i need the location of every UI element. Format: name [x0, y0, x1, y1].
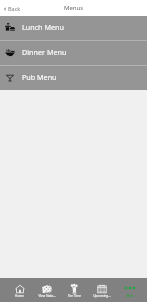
staticText: Lunch Menu: [22, 22, 64, 32]
staticText: Dinner Menu: [22, 47, 67, 57]
staticText: Home: [15, 294, 24, 298]
button[interactable]: Pub Menu: [0, 66, 147, 90]
button[interactable]: More: [116, 278, 144, 302]
button[interactable]: Upcoming: [88, 278, 116, 302]
staticText: Back: [8, 5, 21, 12]
button[interactable]: Tee Time: [60, 278, 88, 302]
staticText: Menus: [64, 4, 84, 12]
button[interactable]: Dinner Menu: [0, 41, 147, 65]
button[interactable]: Back: [0, 5, 24, 12]
staticText: View Stats...: [38, 294, 56, 298]
button[interactable]: Lunch Menu: [0, 16, 147, 40]
staticText: Pub Menu: [22, 72, 57, 82]
staticText: More: [126, 294, 134, 298]
button[interactable]: Home: [6, 278, 33, 302]
button[interactable]: View Stats: [33, 278, 60, 302]
staticText: Upcoming...: [93, 294, 111, 298]
staticText: Tee Time: [68, 294, 81, 298]
